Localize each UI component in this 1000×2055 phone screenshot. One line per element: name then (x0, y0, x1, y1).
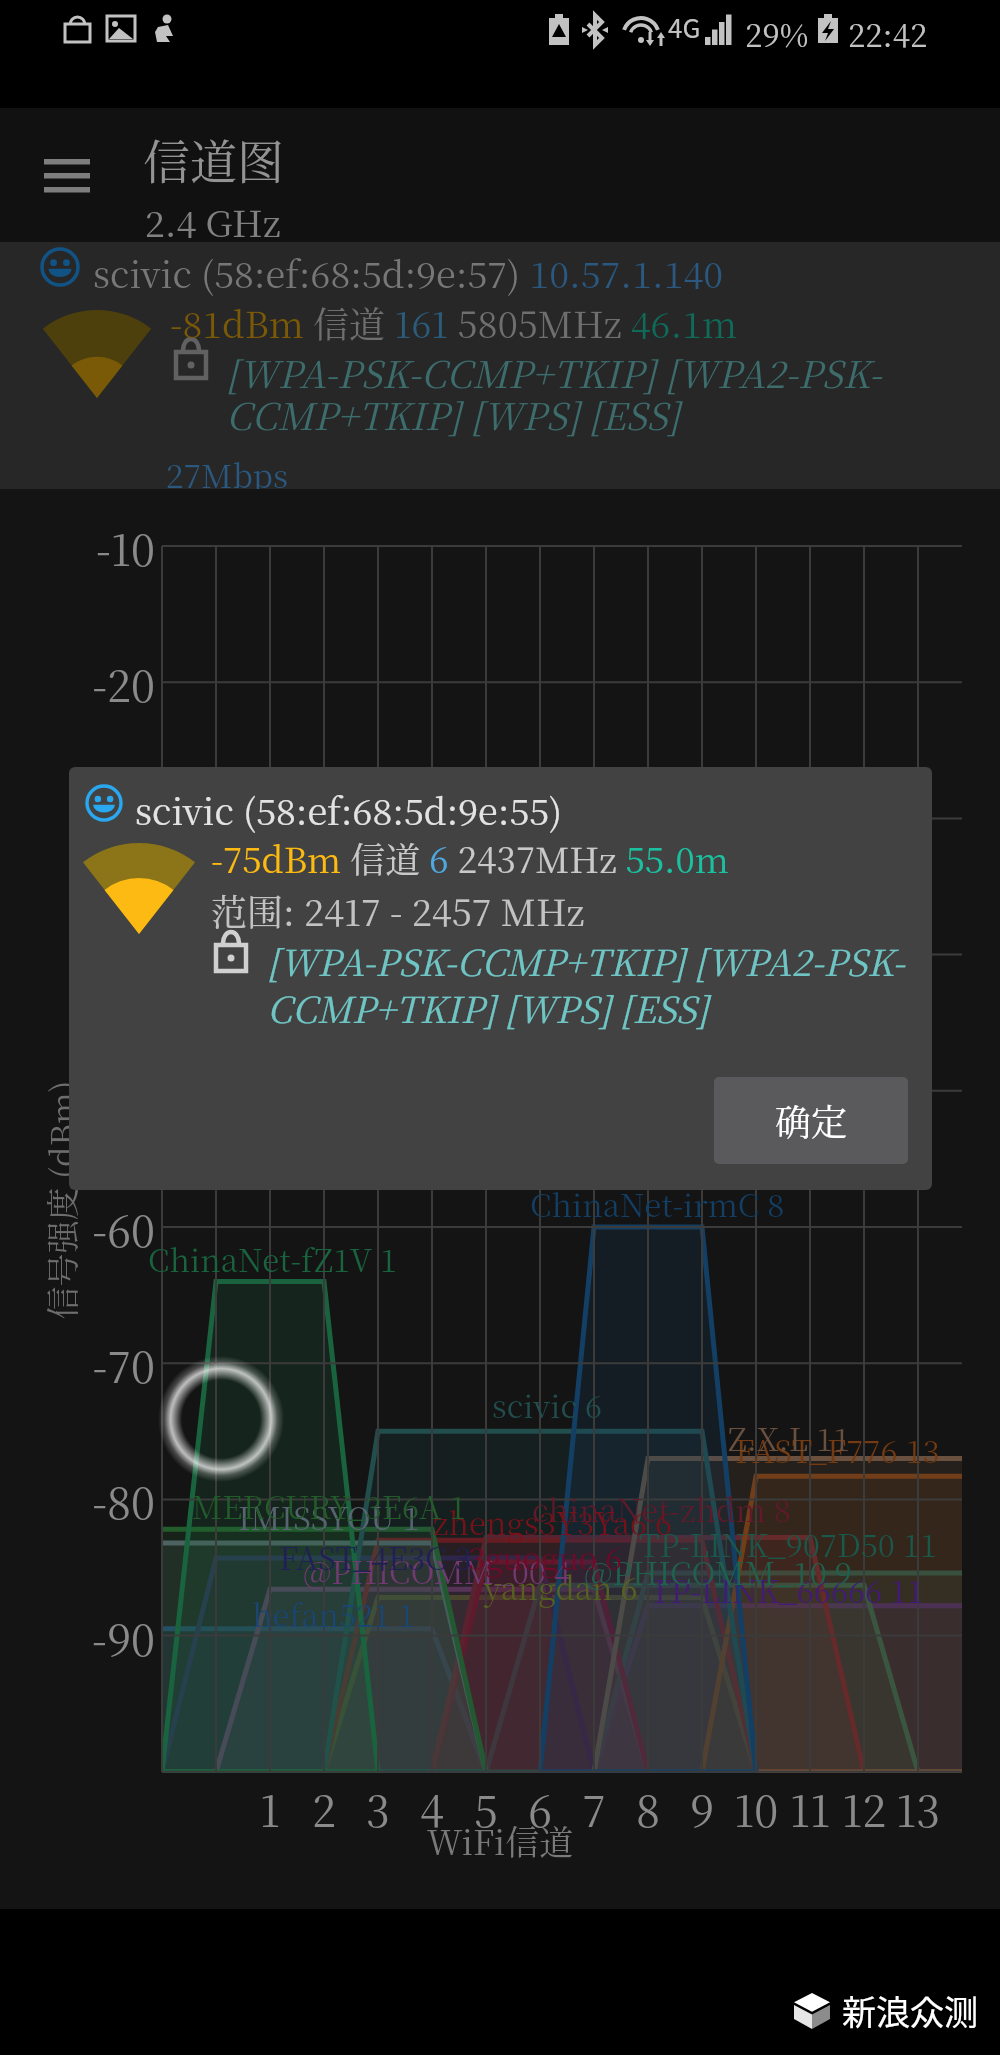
staticText: 7 (560, 1778, 628, 1840)
staticText: 信号强度 (dBm) (37, 1070, 81, 1330)
button[interactable]: Open navigation drawer (14, 128, 120, 222)
staticText: FAST_F776 13 (735, 1427, 940, 1472)
staticText: chinaNet-zhdm 8 (532, 1486, 791, 1531)
staticText: ChinaNet-fZ1V 1 (148, 1236, 398, 1281)
staticText: -70 (80, 1334, 155, 1396)
staticText: 3guoguo 6 (468, 1534, 623, 1579)
staticText: -20 (80, 653, 155, 715)
staticText: 2.4 GHz (145, 196, 281, 248)
staticText: Z.X.L 11 (728, 1415, 851, 1460)
staticText: 12 (830, 1778, 898, 1840)
staticText: -81dBm 信道 161 5805MHz 46.1m (170, 297, 738, 349)
staticText: zhengs3Y3Ya6 6 (433, 1499, 673, 1544)
staticText: 新浪众测 (842, 1986, 978, 2035)
staticText: -75dBm 信道 6 2437MHz 55.0m (211, 833, 729, 883)
staticText: 27Mbps (166, 451, 289, 497)
staticText: 29% (745, 11, 809, 56)
staticText: 5 (452, 1778, 520, 1840)
staticText: 9 (668, 1778, 736, 1840)
staticText: 确定 (775, 1095, 848, 1147)
staticText: 2 (290, 1778, 358, 1840)
staticText: @PHICOMM_00 4 (303, 1548, 571, 1593)
staticText: [WPA-PSK-CCMP+TKIP] [WPA2-PSK- CCMP+TKIP… (267, 935, 905, 1033)
staticText: ChinaNet-irmC 8 (530, 1181, 785, 1226)
staticText: WiFi信道 (0, 1816, 1000, 1865)
staticText: TP-LINK_66666 11 (650, 1567, 925, 1612)
staticText: scivic 6 (492, 1382, 603, 1427)
staticText: scivic (58:ef:68:5d:9e:57) 10.57.1.140 (93, 247, 724, 299)
staticText: -60 (80, 1198, 155, 1260)
staticText: 1 (236, 1778, 304, 1840)
staticText: 范围: 2417 - 2457 MHz (211, 885, 585, 937)
staticText: [WPA-PSK-CCMP+TKIP] [WPA2-PSK- CCMP+TKIP… (226, 345, 882, 441)
staticText: -10 (80, 517, 155, 579)
staticText: -80 (80, 1470, 155, 1532)
staticText: 信道图 (143, 125, 284, 193)
staticText: 8 (614, 1778, 682, 1840)
staticText: -90 (80, 1607, 155, 1669)
staticText: FAST_4E3C 3 (279, 1534, 472, 1579)
staticText: scivic (58:ef:68:5d:9e:55) (135, 784, 563, 836)
staticText: 3 (344, 1778, 412, 1840)
staticText: 4 (398, 1778, 466, 1840)
staticText: -30 (80, 789, 155, 851)
staticText: TP-LINK_907D50 11 (639, 1521, 937, 1566)
staticText: 11 (776, 1778, 844, 1840)
button[interactable]: 确定 (714, 1077, 908, 1164)
staticText: yangdan 6 (484, 1564, 638, 1609)
staticText: -40 (80, 926, 155, 988)
staticText: IMISSYOU 1 (238, 1494, 420, 1539)
staticText: @PHICOMM_10 9 (584, 1549, 852, 1594)
staticText: 4G (668, 8, 701, 46)
staticText: 6 (506, 1778, 574, 1840)
staticText: MERCURY_3E6A 1 (192, 1483, 467, 1528)
staticText: 10 (722, 1778, 790, 1840)
staticText: 13 (884, 1778, 952, 1840)
staticText: hefan521 1 (252, 1591, 416, 1636)
staticText: 22:42 (848, 11, 928, 56)
